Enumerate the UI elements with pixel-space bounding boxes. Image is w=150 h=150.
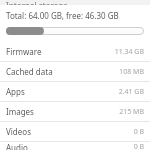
staticText: 0 B	[133, 127, 144, 137]
button[interactable]: Audio	[0, 142, 150, 150]
staticText: 0 B	[133, 142, 144, 150]
staticText: Audio	[6, 142, 133, 150]
staticText: Images	[6, 106, 119, 117]
staticText: 2.41 GB	[118, 87, 144, 97]
button[interactable]: Videos	[0, 122, 150, 141]
staticText: Cached data	[6, 66, 119, 77]
button[interactable]: Apps	[0, 82, 150, 101]
staticText: Apps	[6, 86, 118, 97]
button[interactable]: Firmware	[0, 42, 150, 61]
staticText: Videos	[6, 126, 133, 137]
staticText: 11.34 GB	[114, 47, 144, 57]
staticText: Total: 64.00 GB, free: 46.30 GB	[6, 10, 119, 21]
button[interactable]: Images	[0, 102, 150, 121]
button[interactable]: Cached data	[0, 62, 150, 81]
staticText: 215 MB	[119, 107, 144, 117]
staticText: Internal storage	[6, 0, 68, 5]
staticText: 108 MB	[119, 67, 144, 77]
staticText: Firmware	[6, 46, 114, 57]
